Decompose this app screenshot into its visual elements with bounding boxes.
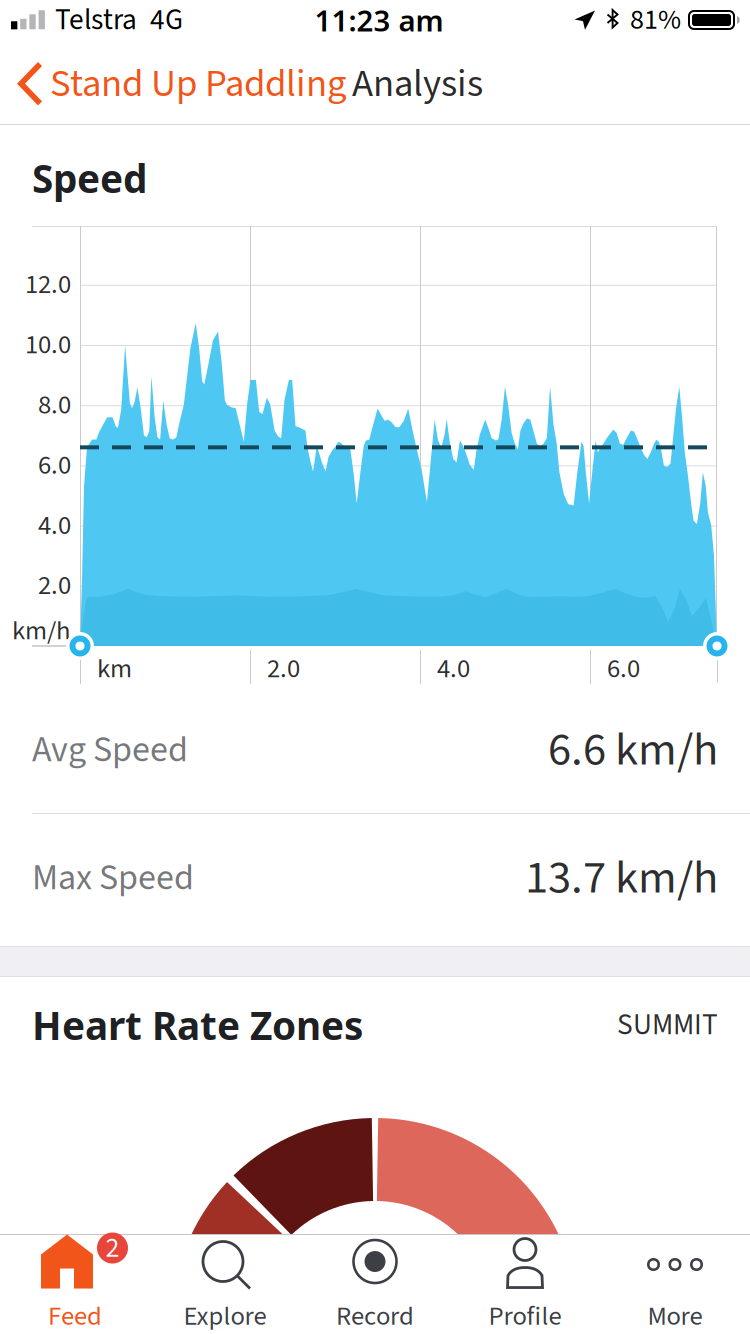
staticText: Max Speed [32,852,194,904]
button[interactable]: 2 [0,1234,150,1334]
staticText: Feed [48,1297,102,1334]
staticText: 6.0 [607,650,640,688]
staticText: 6.0 [38,446,71,484]
staticText: 13.7 km/h [525,845,718,911]
staticText: Telstra [55,0,137,41]
staticText: Avg Speed [32,724,188,776]
button[interactable]: Explore [150,1234,300,1334]
button[interactable]: Stand Up Paddling [0,44,360,124]
staticText: km [97,650,132,688]
staticText: 11:23 am [314,0,443,40]
staticText: km/h [12,612,71,650]
button[interactable]: Profile [450,1234,600,1334]
staticText: 6.6 km/h [548,717,718,783]
staticText: Stand Up Paddling [50,56,346,112]
button[interactable]: Record [300,1234,450,1334]
staticText: Analysis [352,56,483,112]
staticText: 2.0 [38,567,71,605]
staticText: 2 [105,1228,119,1268]
staticText: 81% [630,0,681,40]
staticText: 10.0 [25,326,71,364]
staticText: 4.0 [38,507,71,545]
staticText: More [647,1297,702,1334]
staticText: Profile [488,1297,561,1334]
staticText: SUMMIT [617,1004,718,1046]
staticText: 4G [150,0,183,41]
staticText: Explore [183,1297,266,1334]
staticText: Record [336,1297,414,1334]
staticText: 4.0 [437,650,470,688]
staticText: 8.0 [38,386,71,424]
button[interactable]: More [600,1234,750,1334]
staticText: 2.0 [267,650,300,688]
staticText: 12.0 [25,266,71,304]
staticText: Heart Rate Zones [32,999,363,1051]
staticText: Speed [32,152,147,204]
